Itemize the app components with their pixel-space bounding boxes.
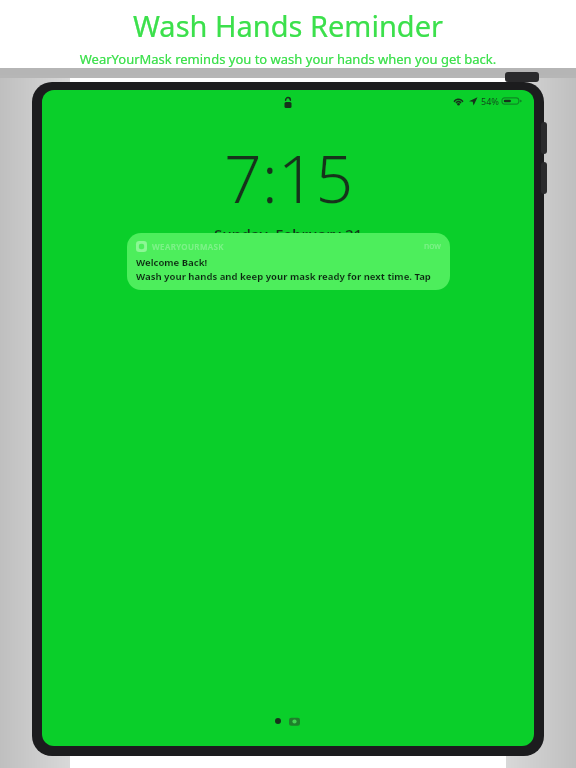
button[interactable]: WEARYOURMASK xyxy=(127,233,450,290)
staticText: 7:15 xyxy=(224,132,354,222)
staticText: WEARYOURMASK xyxy=(152,241,224,252)
staticText: Wash Hands Reminder xyxy=(0,6,576,45)
staticText: Welcome Back! xyxy=(136,256,208,269)
staticText: 54% xyxy=(481,95,499,107)
staticText: Wash your hands and keep your mask ready… xyxy=(136,270,441,283)
staticText: Sunday, February 21 xyxy=(214,224,363,244)
staticText: now xyxy=(424,240,441,252)
staticText: WearYourMask reminds you to wash your ha… xyxy=(0,50,576,68)
button[interactable]: Camera xyxy=(287,714,301,728)
